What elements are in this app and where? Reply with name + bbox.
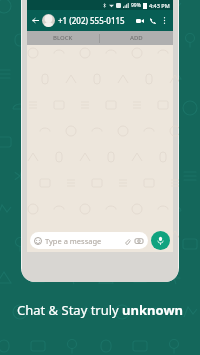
button[interactable]: Video call: [133, 14, 146, 27]
button[interactable]: Record voice message: [151, 231, 170, 250]
button[interactable]: Type a message: [30, 232, 148, 249]
button[interactable]: ADD: [100, 31, 173, 45]
button[interactable]: Contact avatar: [42, 14, 55, 27]
button[interactable]: Camera: [134, 236, 144, 246]
staticText: 99%: [131, 2, 141, 9]
button[interactable]: Call: [146, 14, 159, 27]
staticText: BLOCK: [53, 34, 73, 42]
staticText: Type a message: [45, 236, 122, 246]
button[interactable]: Attach: [122, 236, 132, 246]
button[interactable]: BLOCK: [27, 31, 99, 45]
staticText: Chat & Stay truly unknown: [17, 301, 183, 319]
staticText: +1 (202) 555-0115: [58, 15, 133, 26]
button[interactable]: Back: [30, 15, 41, 26]
button[interactable]: More options: [159, 15, 170, 26]
staticText: ADD: [130, 34, 143, 42]
staticText: 4:43 PM: [149, 2, 170, 9]
